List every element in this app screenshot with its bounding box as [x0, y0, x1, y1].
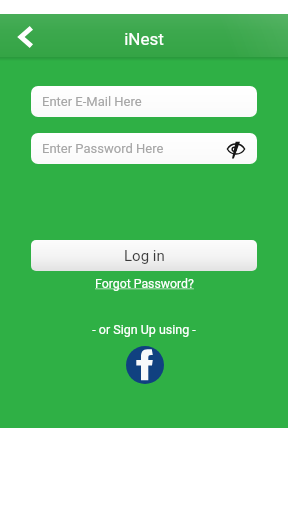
staticText: - or Sign Up using -	[0, 322, 288, 337]
staticText: Forgot Password?	[95, 277, 194, 291]
staticText: iNest	[0, 29, 288, 49]
button[interactable]: Enter E-Mail Here	[31, 86, 257, 117]
staticText: Enter Password Here	[42, 141, 164, 156]
button[interactable]: Sign up with Facebook	[126, 346, 164, 384]
staticText: Log in	[124, 247, 165, 265]
staticText: Enter E-Mail Here	[42, 94, 142, 109]
button[interactable]: Back	[5, 17, 45, 57]
button[interactable]: Enter Password Here	[31, 133, 257, 164]
button[interactable]: Log in	[31, 240, 257, 271]
button[interactable]: Forgot Password?	[84, 276, 204, 292]
